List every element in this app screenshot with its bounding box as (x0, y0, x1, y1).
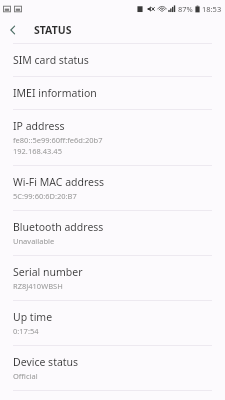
staticText: Wi-Fi MAC address (13, 175, 105, 189)
staticText: SIM card status (13, 53, 89, 67)
staticText: RZ8J410WBSH (13, 281, 63, 291)
button[interactable]: Device status (0, 346, 225, 390)
staticText: 5C:99:60:6D:20:B7 (13, 191, 77, 201)
staticText: 18:53 (202, 4, 222, 14)
button[interactable]: Back (0, 17, 26, 43)
staticText: 0:17:54 (13, 326, 39, 336)
staticText: Bluetooth address (13, 220, 104, 234)
button[interactable]: Serial number (0, 256, 225, 300)
button[interactable]: Bluetooth address (0, 211, 225, 255)
staticText: STATUS (34, 23, 72, 37)
staticText: Unavailable (13, 236, 55, 246)
button[interactable]: Wi-Fi MAC address (0, 166, 225, 210)
staticText: Serial number (13, 265, 83, 279)
staticText: 192.168.43.45 (13, 146, 62, 156)
staticText: Up time (13, 310, 53, 324)
staticText: 87% (178, 4, 193, 14)
staticText: fe80::5e99:60ff:fe6d:20b7 (13, 135, 103, 145)
staticText: IMEI information (13, 86, 97, 100)
button[interactable]: SIM card status (0, 44, 225, 76)
staticText: Device status (13, 355, 79, 369)
staticText: IP address (13, 119, 65, 133)
button[interactable]: Up time (0, 301, 225, 345)
button[interactable]: IP address (0, 110, 225, 165)
button[interactable]: IMEI information (0, 77, 225, 109)
staticText: Official (13, 371, 38, 381)
